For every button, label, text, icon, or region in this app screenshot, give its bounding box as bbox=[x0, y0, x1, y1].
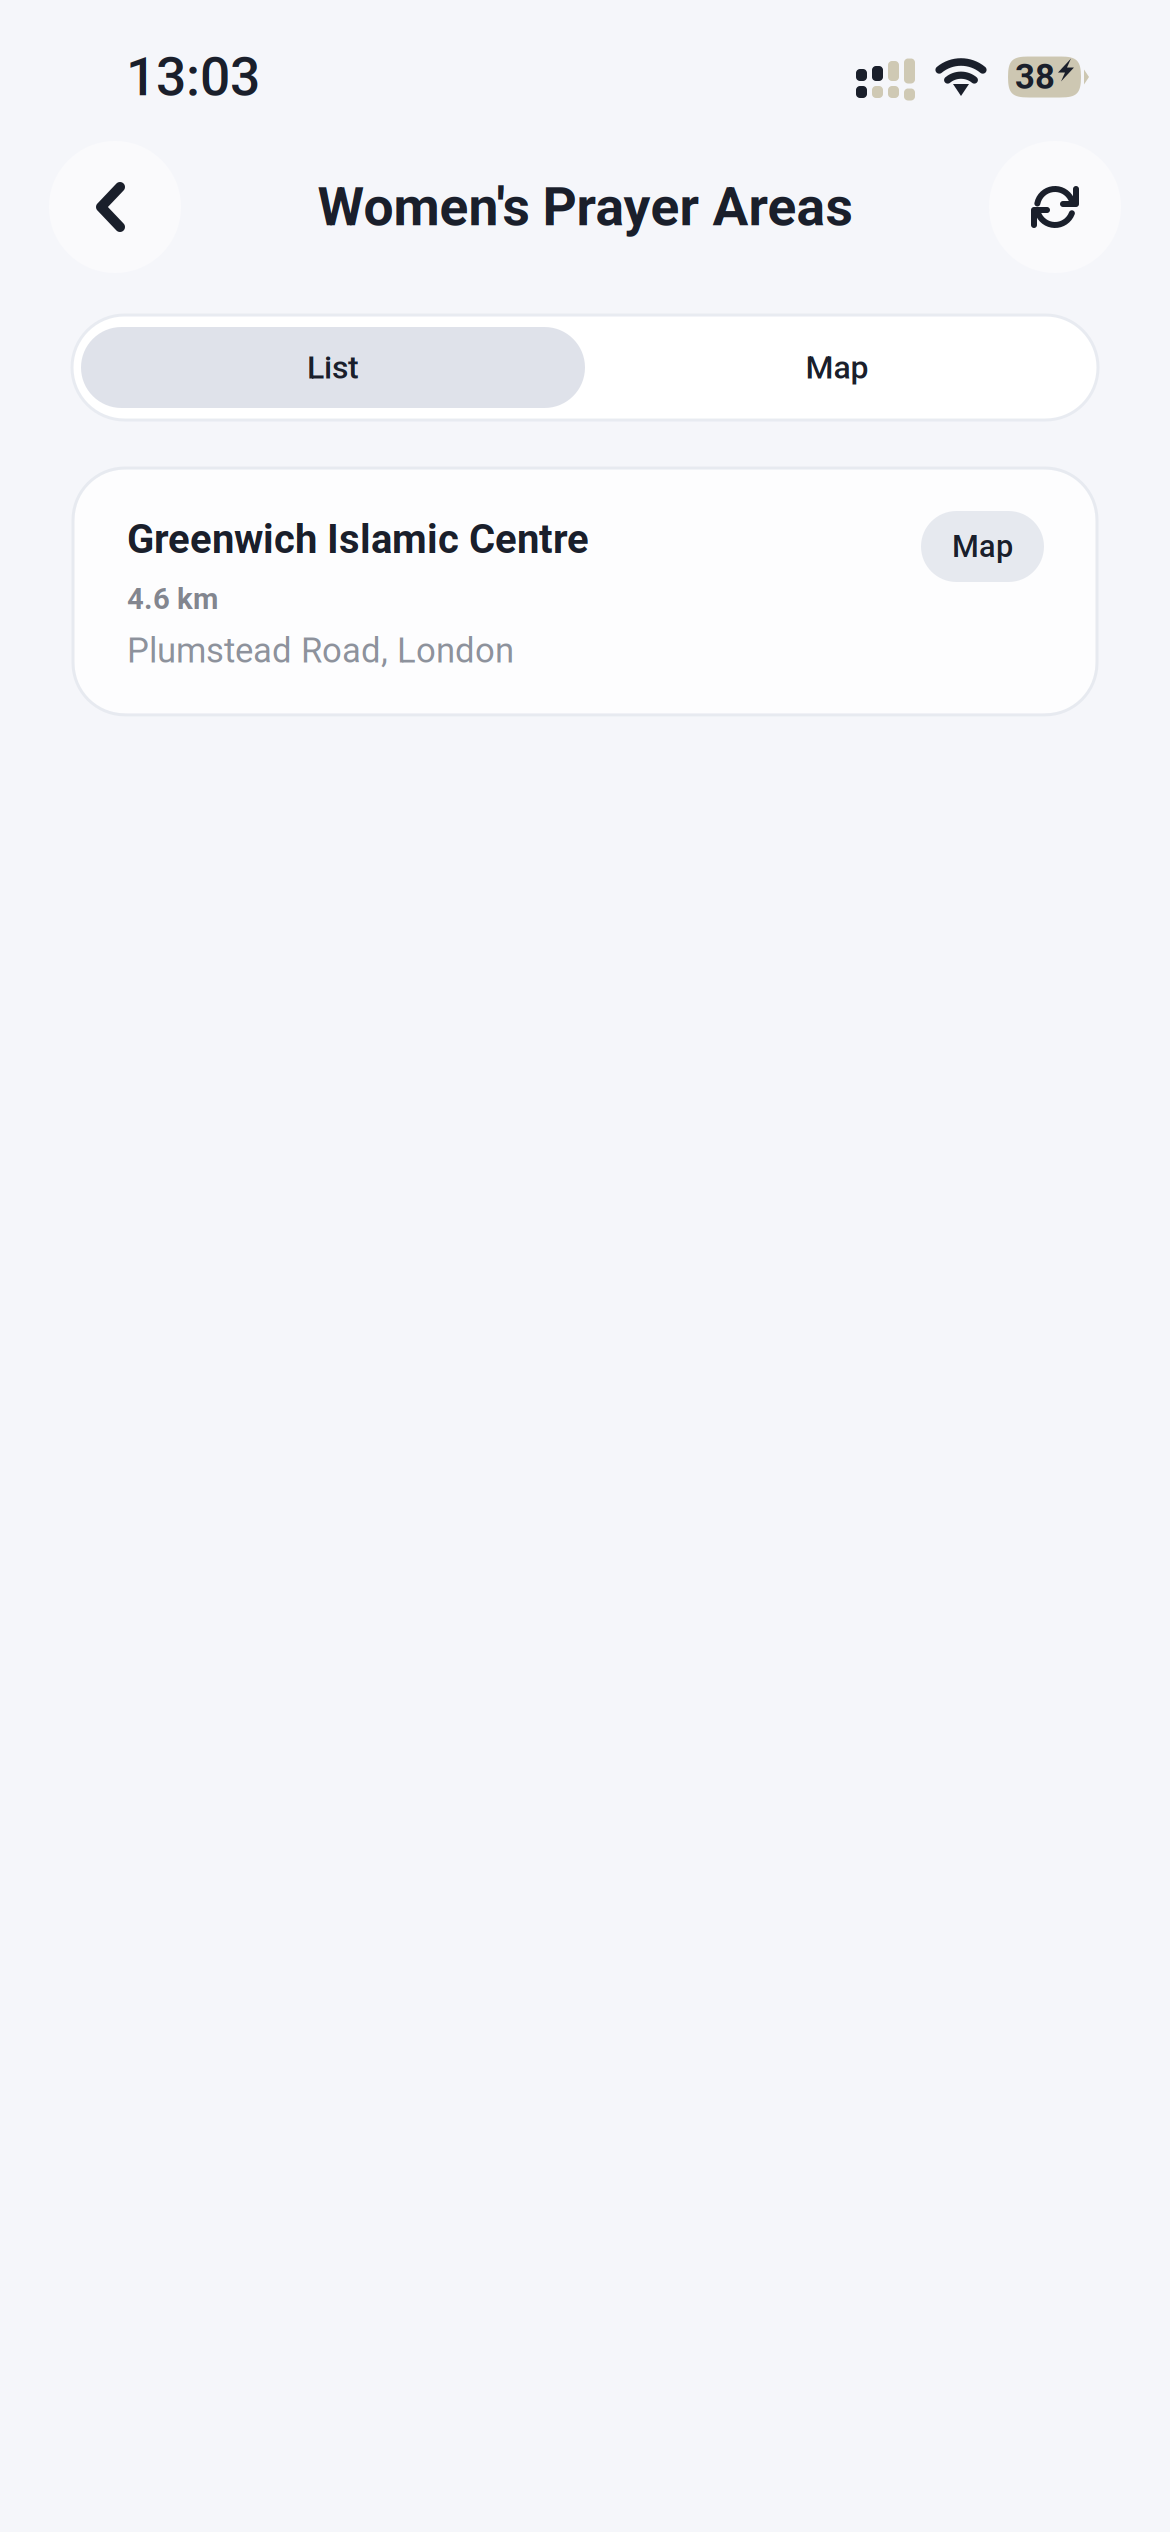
staticText: 13:03 bbox=[126, 46, 260, 108]
staticText: Plumstead Road, London bbox=[127, 630, 514, 671]
button[interactable]: Back bbox=[49, 141, 181, 273]
staticText: Greenwich Islamic Centre bbox=[127, 516, 589, 563]
staticText: Women's Prayer Areas bbox=[317, 176, 852, 238]
staticText: List bbox=[307, 349, 359, 386]
button[interactable]: List bbox=[81, 327, 585, 408]
staticText: 4.6 km bbox=[127, 582, 218, 616]
button[interactable]: Greenwich Islamic Centre bbox=[73, 468, 1097, 715]
button[interactable]: Refresh bbox=[989, 141, 1121, 273]
staticText: Map bbox=[952, 528, 1013, 564]
staticText: 38 bbox=[1015, 57, 1055, 97]
button[interactable]: Map bbox=[585, 327, 1089, 408]
staticText: Map bbox=[805, 349, 868, 386]
